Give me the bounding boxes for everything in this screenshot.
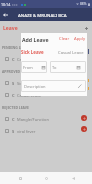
staticText: C — [12, 117, 15, 122]
button[interactable]: Apply filter — [81, 126, 87, 132]
button[interactable]: Sick Leave — [21, 48, 44, 56]
button[interactable]: Home — [39, 172, 53, 184]
staticText: S — [12, 81, 15, 86]
staticText: 10:14 — [1, 2, 11, 7]
staticText: Sick Leave — [21, 49, 44, 55]
staticText: Apply — [74, 36, 86, 42]
staticText: REJECTED LEAVE — [2, 105, 29, 110]
button[interactable]: Add — [82, 24, 90, 32]
staticText: PENDING LEAVE — [2, 45, 29, 50]
staticText: Add Leave — [22, 36, 49, 43]
staticText: Casual Leave — [17, 57, 42, 62]
staticText: Clear — [59, 36, 70, 42]
staticText: APPROVED LEAVE — [2, 69, 32, 74]
button[interactable]: From — [21, 61, 47, 73]
button[interactable]: Back — [0, 8, 10, 21]
staticText: From — [23, 65, 33, 70]
staticText: C — [12, 93, 15, 98]
staticText: Casual Leave — [17, 93, 42, 98]
button[interactable]: To — [50, 61, 86, 73]
button[interactable]: S — [0, 77, 92, 89]
button[interactable]: Description — [21, 80, 86, 92]
staticText: Description — [24, 84, 46, 89]
staticText: ANAZE & MRUNALI BCA — [18, 12, 67, 18]
button[interactable]: Add leave — [81, 115, 87, 121]
staticText: To — [52, 65, 57, 70]
staticText: Sick Leave — [17, 81, 37, 86]
button[interactable]: Recents — [13, 172, 27, 184]
staticText: C — [12, 57, 15, 62]
button[interactable]: Back — [66, 172, 80, 184]
staticText: 88% — [80, 2, 87, 6]
button[interactable]: C — [0, 113, 92, 125]
staticText: Leave — [3, 25, 18, 32]
button[interactable]: Casual Leave — [58, 49, 84, 57]
staticText: Mangle/Function — [17, 117, 49, 122]
button[interactable]: C — [0, 89, 92, 101]
staticText: S — [12, 129, 15, 134]
button[interactable]: Clear — [58, 35, 71, 43]
button[interactable]: C — [0, 53, 92, 65]
staticText: viral fever — [17, 129, 36, 134]
button[interactable]: S — [0, 125, 92, 137]
button[interactable]: Apply — [73, 35, 87, 43]
staticText: Casual Leave — [58, 50, 84, 56]
